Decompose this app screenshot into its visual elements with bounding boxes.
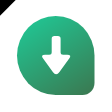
button[interactable]: Download [0, 0, 112, 112]
